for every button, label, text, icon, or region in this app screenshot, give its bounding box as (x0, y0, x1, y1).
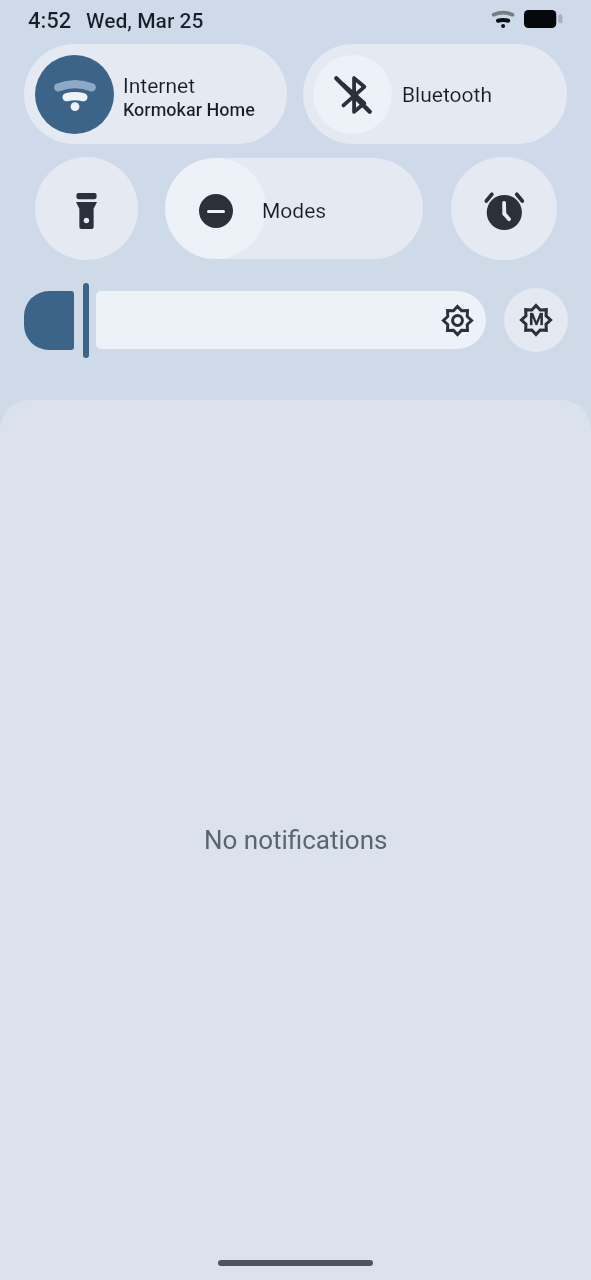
button[interactable]: Modes (165, 158, 423, 259)
button[interactable]: Bluetooth (303, 44, 567, 144)
staticText: No notifications (204, 825, 388, 855)
button[interactable]: Brightness (24, 280, 486, 360)
staticText: Kormokar Home (123, 99, 255, 120)
staticText: Bluetooth (402, 83, 492, 108)
button[interactable]: Flashlight (35, 157, 138, 260)
staticText: 4:52 (28, 8, 72, 34)
button[interactable]: Alarm (451, 157, 557, 260)
staticText: Internet (123, 74, 196, 99)
staticText: Wed, Mar 25 (86, 9, 204, 34)
staticText: M (529, 309, 544, 329)
staticText: Modes (262, 199, 327, 224)
button[interactable]: Internet (24, 44, 287, 144)
button[interactable]: Adaptive brightness (504, 288, 568, 352)
